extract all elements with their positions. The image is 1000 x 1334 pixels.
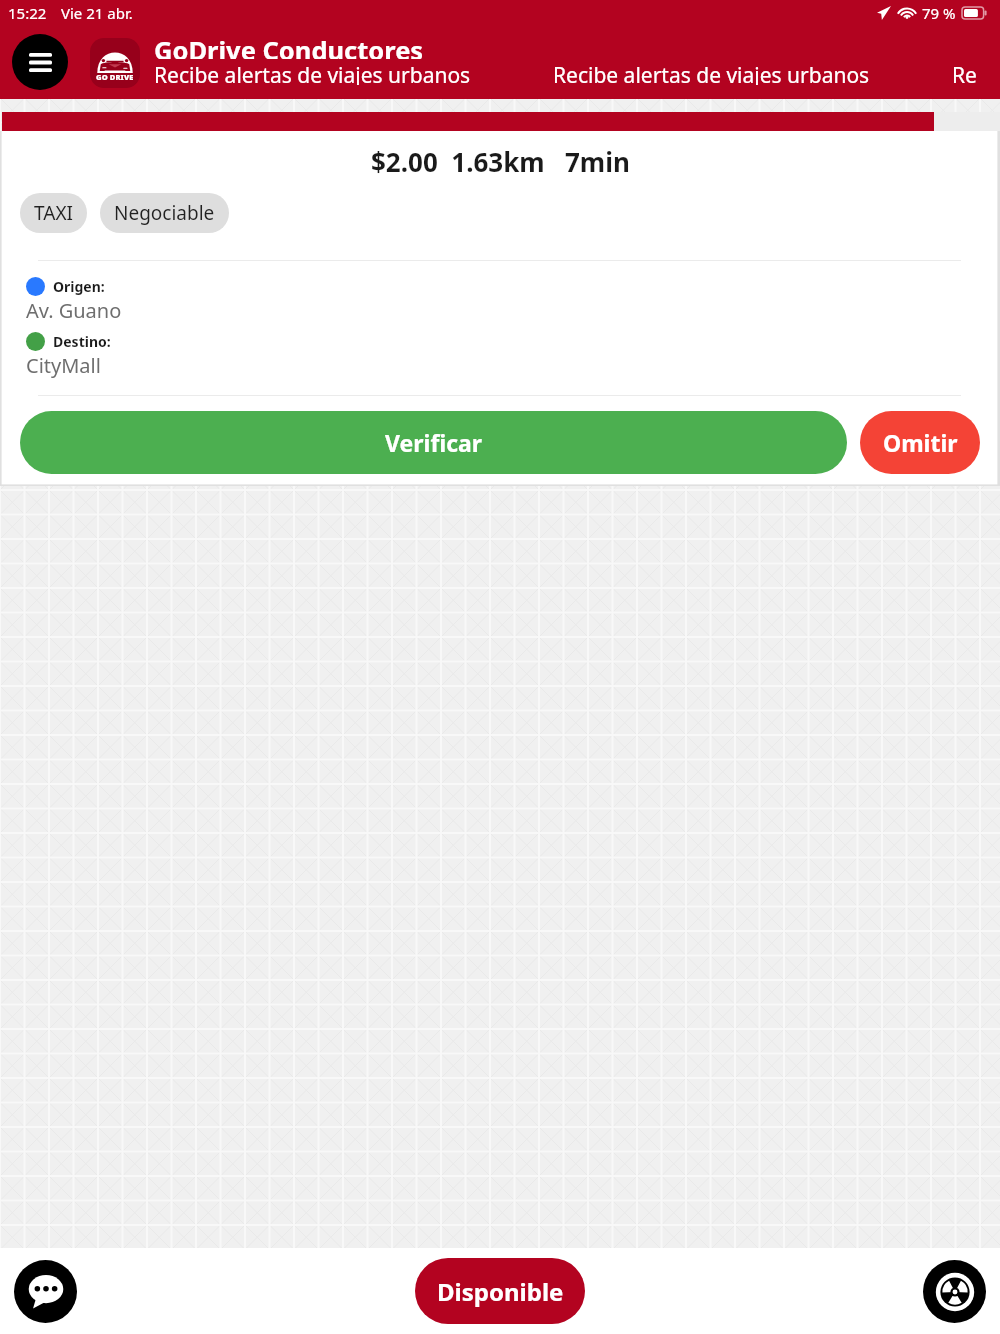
- staticText: Vie 21 abr.: [61, 3, 133, 23]
- staticText: TAXI: [34, 200, 73, 226]
- button[interactable]: Alerta: [923, 1260, 986, 1323]
- staticText: Recibe alertas de viajes urbanos: [553, 61, 870, 85]
- button[interactable]: Disponible: [415, 1258, 585, 1324]
- staticText: CityMall: [26, 352, 101, 379]
- button[interactable]: $2.00 1.63km 7min: [0, 131, 1000, 486]
- staticText: GoDrive Conductores: [154, 33, 424, 59]
- staticText: Omitir: [883, 427, 958, 458]
- staticText: Origen:: [53, 277, 105, 296]
- staticText: 79 %: [922, 3, 956, 23]
- staticText: 15:22: [8, 3, 47, 23]
- staticText: Destino:: [53, 332, 111, 351]
- staticText: GO DRIVE: [96, 72, 134, 82]
- staticText: Disponible: [437, 1275, 564, 1308]
- button[interactable]: Verificar: [20, 411, 847, 474]
- button[interactable]: Omitir: [860, 411, 980, 474]
- button[interactable]: Chat: [14, 1260, 77, 1323]
- staticText: Recibe alertas de viajes urbanos: [154, 61, 471, 85]
- button[interactable]: TAXI: [20, 193, 87, 233]
- staticText: Recibe alertas de viajes urbanos: [952, 61, 980, 85]
- staticText: Verificar: [385, 427, 483, 458]
- button[interactable]: Negociable: [100, 193, 229, 233]
- staticText: Av. Guano: [26, 297, 122, 324]
- button[interactable]: Menu: [12, 34, 68, 90]
- staticText: $2.00 1.63km 7min: [371, 144, 630, 179]
- staticText: Negociable: [114, 200, 215, 226]
